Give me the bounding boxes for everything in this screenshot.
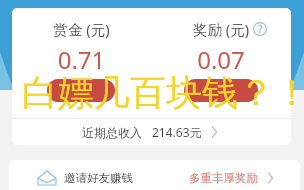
staticText: 白嫖几百块钱？！ xyxy=(14,70,304,110)
staticText: 多重丰厚奖励 xyxy=(189,171,258,185)
staticText: 0.71 xyxy=(12,43,151,76)
staticText: 近期总收入 xyxy=(82,125,142,140)
staticText: 邀请好友赚钱 xyxy=(64,171,133,185)
button[interactable]: 邀请好友赚钱 xyxy=(9,160,300,190)
staticText: 214.63元 xyxy=(152,124,202,140)
staticText: 0.07 xyxy=(151,43,291,76)
button[interactable]: Help xyxy=(253,22,267,36)
button[interactable]: 近期总收入 xyxy=(12,119,291,145)
staticText: ? xyxy=(258,22,263,36)
staticText: 奖励 (元) xyxy=(151,19,291,39)
staticText: 赏金 (元) xyxy=(12,19,151,39)
